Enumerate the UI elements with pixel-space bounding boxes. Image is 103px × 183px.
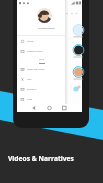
staticText: Tools — [39, 58, 45, 61]
button[interactable]: Profile photo — [37, 8, 52, 23]
button[interactable]: Questions — [17, 85, 65, 93]
button[interactable]: Videos and Stream — [17, 65, 65, 73]
button[interactable]: Chats — [17, 95, 65, 103]
staticText: Videos & Narratives — [8, 154, 74, 163]
staticText: Chats — [27, 98, 33, 101]
button[interactable]: Premium version — [17, 47, 65, 55]
staticText: Clips — [27, 78, 32, 81]
button[interactable]: Clips — [17, 75, 65, 83]
staticText: Videos and Stream — [27, 68, 45, 71]
staticText: Premium version — [27, 50, 44, 53]
button[interactable]: Theme — [17, 37, 65, 45]
staticText: Andrew Watson — [38, 27, 55, 30]
staticText: Theme — [27, 40, 34, 43]
staticText: Questions — [27, 88, 37, 91]
